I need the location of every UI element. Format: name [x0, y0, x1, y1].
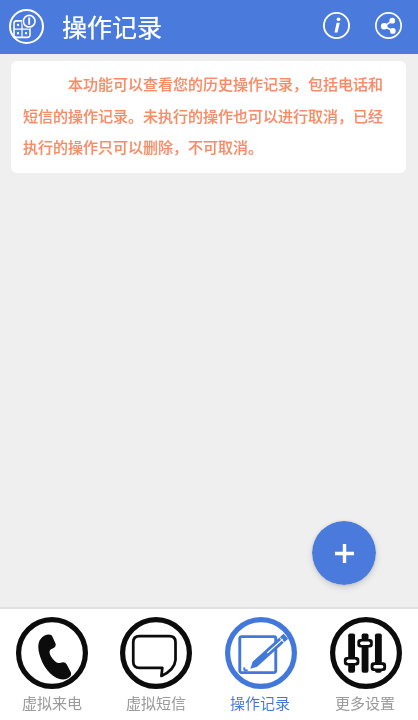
button[interactable]: 虚拟短信	[104, 609, 208, 720]
staticText: 更多设置	[335, 692, 396, 714]
button[interactable]: Info	[314, 3, 358, 47]
button[interactable]: Share	[366, 3, 410, 47]
staticText: 操作记录	[230, 692, 291, 714]
button[interactable]: 虚拟来电	[0, 609, 104, 720]
button[interactable]: App menu	[2, 2, 50, 50]
staticText: 本功能可以查看您的历史操作记录，包括电话和 短信的操作记录。未执行的操作也可以进…	[23, 73, 384, 157]
button[interactable]: Add	[312, 521, 376, 585]
button[interactable]: 更多设置	[313, 609, 418, 720]
staticText: 虚拟来电	[22, 692, 83, 714]
button[interactable]: 操作记录	[208, 609, 313, 720]
staticText: 虚拟短信	[126, 692, 187, 714]
button[interactable]: 本功能可以查看您的历史操作记录，包括电话和 短信的操作记录。未执行的操作也可以进…	[11, 61, 406, 173]
staticText: 操作记录	[62, 8, 163, 44]
